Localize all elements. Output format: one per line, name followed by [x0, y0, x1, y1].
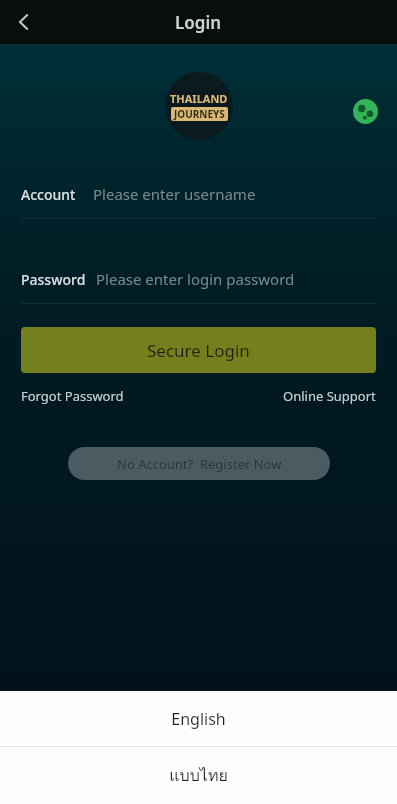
staticText: Login: [175, 11, 222, 34]
button[interactable]: English: [0, 691, 397, 746]
button[interactable]: Forgot Password: [21, 387, 124, 405]
button[interactable]: Language: [349, 95, 381, 127]
button[interactable]: No Account? Register Now: [68, 447, 330, 480]
staticText: Password: [21, 270, 86, 289]
staticText: Forgot Password: [21, 387, 124, 405]
staticText: JOURNEYS: [174, 107, 225, 121]
button[interactable]: Please enter username: [93, 184, 256, 204]
button[interactable]: Online Support: [283, 387, 376, 405]
staticText: Online Support: [283, 387, 376, 405]
staticText: No Account? Register Now: [117, 455, 282, 473]
staticText: Secure Login: [147, 339, 250, 362]
button[interactable]: Please enter login password: [96, 269, 295, 289]
button[interactable]: Secure Login: [21, 327, 376, 373]
button[interactable]: Back: [0, 0, 48, 44]
staticText: แบบไทย: [169, 763, 228, 788]
staticText: THAILAND: [170, 91, 228, 106]
button[interactable]: แบบไทย: [0, 747, 397, 804]
staticText: Account: [21, 185, 76, 204]
staticText: English: [171, 708, 226, 730]
